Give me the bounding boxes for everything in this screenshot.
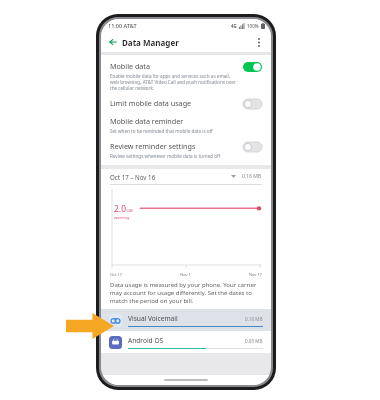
staticText: 11:00 AT&T (108, 22, 137, 29)
other: Pointer arrow (66, 313, 114, 339)
staticText: Enable mobile data for apps and services… (110, 73, 238, 91)
button[interactable]: Toggle on (243, 62, 262, 72)
staticText: Oct 17 – Nov 16 (110, 173, 156, 181)
staticText: 0.16 MB (242, 173, 262, 180)
button[interactable]: Review reminder settings (110, 141, 262, 159)
staticText: Visual Voicemail (128, 314, 245, 323)
button[interactable]: Mobile data (110, 61, 262, 91)
staticText: Set when to be reminded that mobile data… (110, 128, 213, 134)
staticText: warning (114, 215, 130, 220)
staticText: Data usage is measured by your phone. Yo… (110, 281, 262, 305)
button[interactable]: Android OS (101, 331, 271, 353)
staticText: GB (127, 208, 133, 214)
button[interactable]: Limit mobile data usage (110, 98, 262, 109)
staticText: 4G (231, 23, 237, 29)
button[interactable]: Oct 17 – Nov 16 (101, 169, 271, 184)
staticText: Nov 1 (160, 272, 211, 277)
button[interactable]: Back (106, 35, 120, 49)
staticText: Nov 17 (211, 272, 262, 277)
staticText: Review reminder settings (110, 141, 196, 151)
staticText: 0.10 MB (245, 316, 263, 322)
button[interactable]: Toggle off (243, 99, 262, 109)
staticText: 0.05 MB (245, 338, 263, 344)
staticText: Mobile data reminder (110, 116, 184, 126)
staticText: 2.0 (114, 203, 127, 215)
button[interactable]: Mobile data reminder (110, 116, 262, 134)
staticText: Limit mobile data usage (110, 98, 192, 108)
button[interactable]: Visual Voicemail (101, 309, 271, 331)
button[interactable]: Toggle off (243, 142, 262, 152)
staticText: Android OS (128, 336, 245, 345)
staticText: Mobile data (110, 61, 150, 71)
staticText: Review settings whenever mobile data is … (110, 153, 221, 159)
staticText: 100% (247, 23, 259, 29)
staticText: Data Manager (122, 37, 179, 48)
staticText: Oct 17 (110, 272, 160, 277)
button[interactable]: More options (252, 36, 265, 49)
